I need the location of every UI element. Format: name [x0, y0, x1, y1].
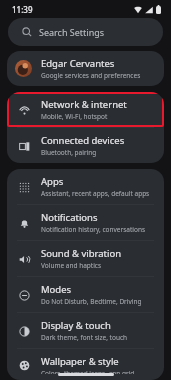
button[interactable]: Wallpaper & style	[7, 349, 164, 380]
staticText: Do Not Disturb, Bedtime, Driving	[41, 297, 142, 306]
staticText: Dark theme, font size, touch	[41, 333, 128, 342]
staticText: Bluetooth, pairing	[41, 148, 97, 157]
button[interactable]: Notifications	[7, 205, 164, 240]
staticText: Display & touch	[41, 319, 111, 332]
staticText: Sound & vibration	[41, 247, 122, 260]
staticText: Apps	[41, 175, 64, 188]
button[interactable]: Connected devices	[7, 128, 164, 163]
staticText: Modes	[41, 283, 72, 296]
staticText: Assistant, recent apps, default apps	[41, 189, 150, 198]
staticText: 11:39	[12, 4, 33, 15]
staticText: Edgar Cervantes	[41, 57, 115, 70]
staticText: Wallpaper & style	[41, 355, 119, 368]
button[interactable]: Display & touch	[7, 313, 164, 348]
staticText: Google services and preferences	[41, 71, 141, 80]
staticText: Connected devices	[41, 134, 125, 147]
staticText: Network & internet	[41, 98, 127, 111]
button[interactable]: Modes	[7, 277, 164, 312]
staticText: Notifications	[41, 211, 98, 224]
staticText: Search Settings	[39, 26, 105, 38]
button[interactable]: Network & internet	[7, 92, 164, 127]
button[interactable]: Sound & vibration	[7, 241, 164, 276]
button[interactable]: Edgar Cervantes	[7, 51, 164, 86]
staticText: Mobile, Wi-Fi, hotspot	[41, 112, 108, 121]
staticText: Notification history, conversations	[41, 225, 146, 234]
button[interactable]: Apps	[7, 169, 164, 204]
button[interactable]: Search Settings	[8, 18, 163, 46]
staticText: Volume and haptics	[41, 261, 102, 270]
staticText: Colors, themed icons, app grid	[41, 369, 135, 374]
